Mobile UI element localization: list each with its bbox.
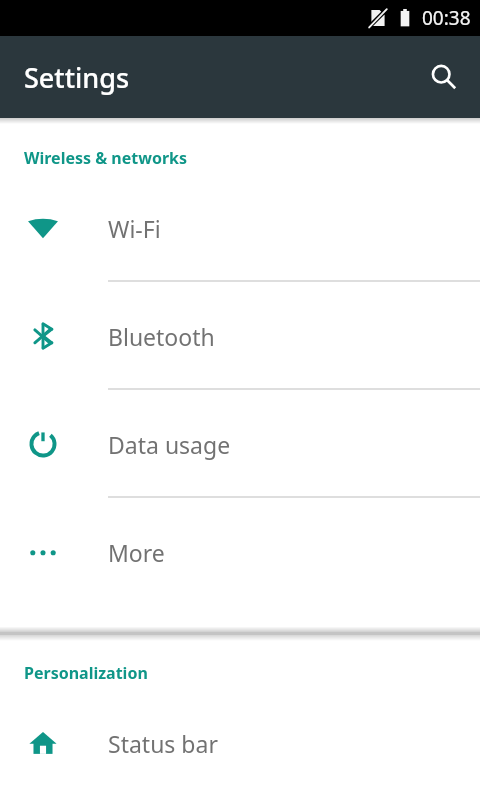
button[interactable]: More [0,498,480,606]
staticText: Settings [24,59,130,96]
button[interactable]: Bluetooth [0,282,480,390]
staticText: Personalization [24,662,148,684]
staticText: More [108,537,165,568]
staticText: Wireless & networks [24,147,188,169]
staticText: Data usage [108,429,231,460]
button[interactable]: Data usage [0,390,480,498]
button[interactable]: Status bar [0,689,480,797]
button[interactable]: Search [420,53,468,101]
staticText: 00:38 [422,5,471,31]
staticText: Status bar [108,728,218,759]
button[interactable]: Wi-Fi [0,174,480,282]
staticText: Wi-Fi [108,213,161,244]
staticText: Bluetooth [108,321,215,352]
